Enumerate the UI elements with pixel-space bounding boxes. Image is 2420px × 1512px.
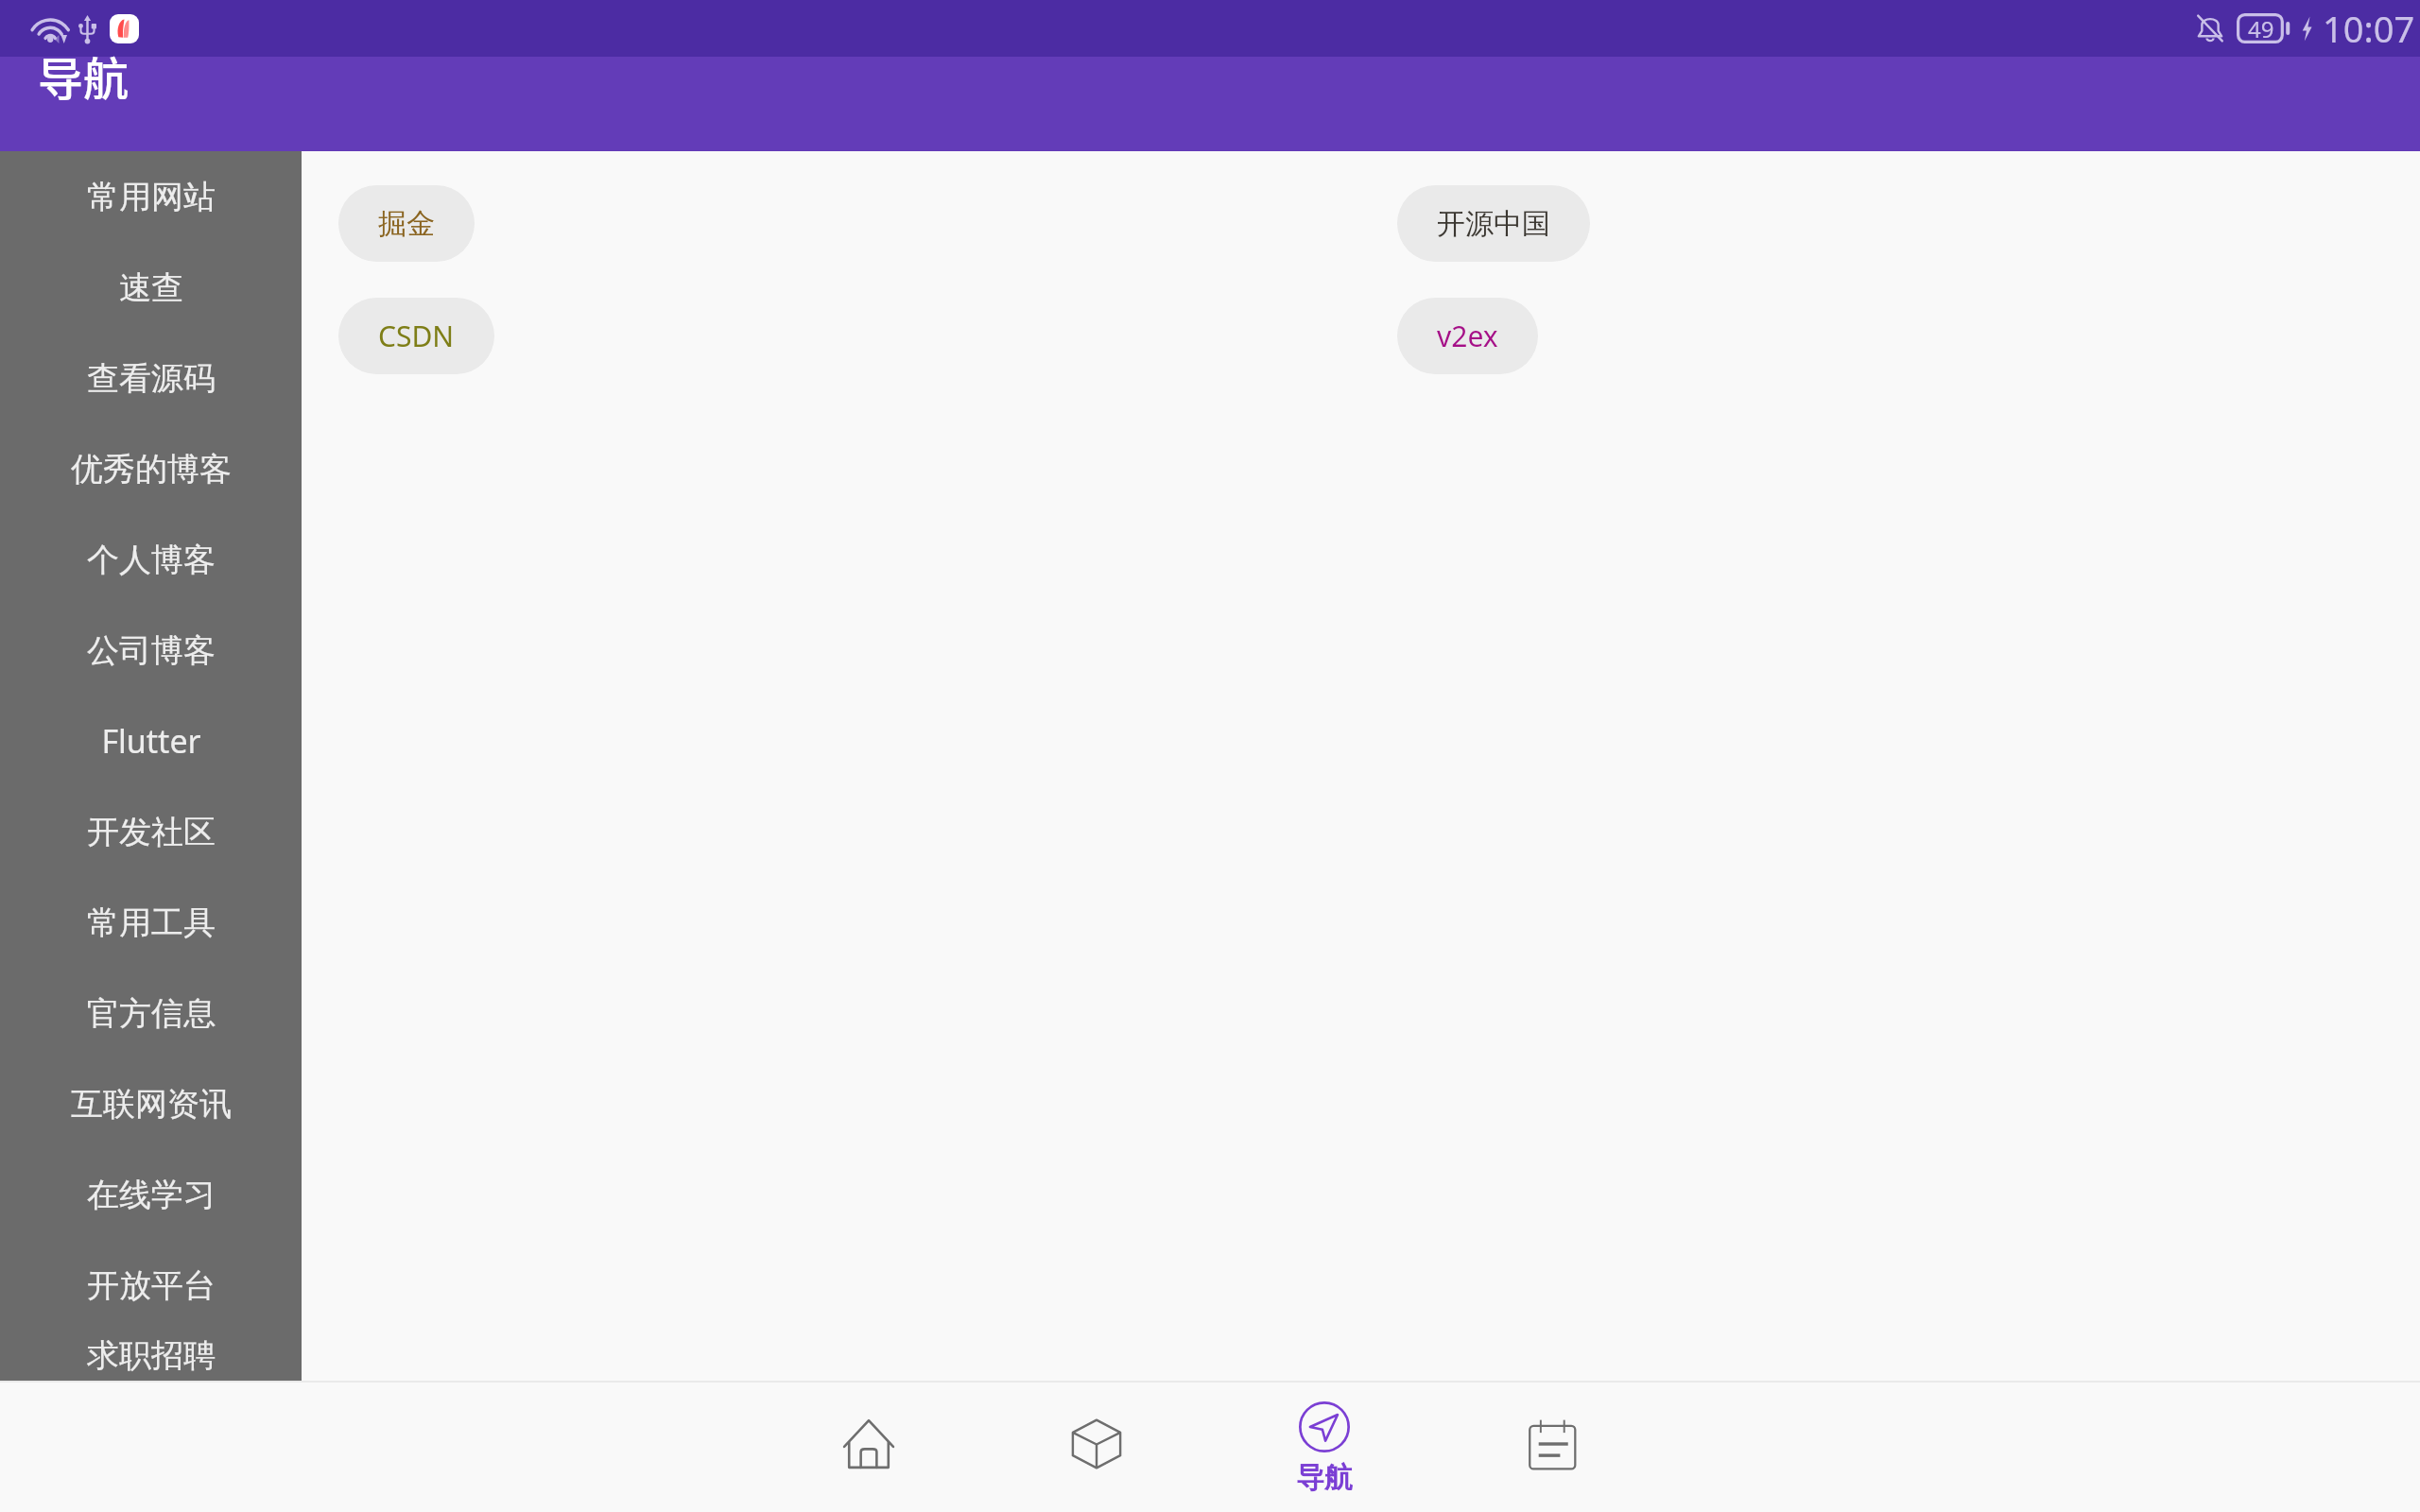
button[interactable]: CSDN [338, 298, 494, 374]
button[interactable]: 常用网站 [0, 151, 302, 242]
staticText: 速查 [119, 267, 183, 308]
button[interactable]: 互联网资讯 [0, 1058, 302, 1149]
staticText: CSDN [378, 317, 455, 355]
button[interactable]: 组件 [982, 1381, 1210, 1512]
staticText: 查看源码 [87, 358, 216, 399]
staticText: v2ex [1437, 317, 1498, 355]
staticText: Flutter [101, 719, 201, 763]
button[interactable]: 优秀的博客 [0, 423, 302, 514]
staticText: 互联网资讯 [71, 1084, 232, 1125]
button[interactable]: 首页 [754, 1381, 982, 1512]
button[interactable]: 开放平台 [0, 1240, 302, 1331]
staticText: 开放平台 [87, 1265, 216, 1306]
staticText: 公司博客 [87, 630, 216, 671]
staticText: 个人博客 [87, 540, 216, 580]
staticText: 求职招聘 [87, 1335, 216, 1376]
button[interactable]: 开源中国 [1397, 185, 1590, 262]
staticText: 开发社区 [87, 812, 216, 852]
button[interactable]: 公司博客 [0, 605, 302, 696]
button[interactable]: v2ex [1397, 298, 1538, 374]
staticText: 开源中国 [1437, 206, 1550, 242]
staticText: 导航 [38, 43, 130, 109]
button[interactable]: 速查 [0, 242, 302, 333]
button[interactable]: 官方信息 [0, 968, 302, 1058]
staticText: 10:07 [2323, 4, 2415, 53]
staticText: 导航 [1296, 1460, 1353, 1496]
staticText: 49 [2248, 13, 2274, 43]
staticText: 优秀的博客 [71, 449, 232, 490]
button[interactable]: 个人博客 [0, 514, 302, 605]
button[interactable]: 掘金 [338, 185, 475, 262]
staticText: 在线学习 [87, 1175, 216, 1215]
button[interactable]: 开发社区 [0, 786, 302, 877]
button[interactable]: 在线学习 [0, 1149, 302, 1240]
button[interactable]: 笔记 [1438, 1381, 1666, 1512]
button[interactable]: 导航 [1210, 1381, 1438, 1512]
button[interactable]: 求职招聘 [0, 1331, 302, 1381]
button[interactable]: 查看源码 [0, 333, 302, 423]
button[interactable]: Flutter [0, 696, 302, 786]
staticText: 常用网站 [87, 177, 216, 217]
staticText: 常用工具 [87, 902, 216, 943]
staticText: 掘金 [378, 206, 435, 242]
button[interactable]: 常用工具 [0, 877, 302, 968]
staticText: 官方信息 [87, 993, 216, 1034]
